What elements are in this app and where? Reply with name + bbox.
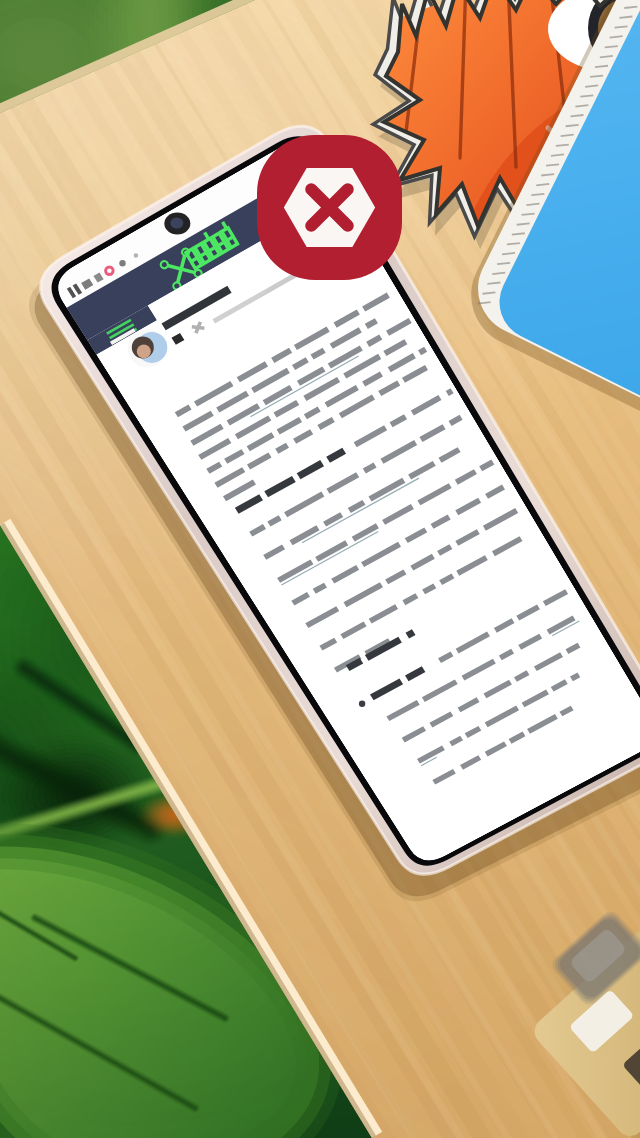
button[interactable]: Phone on desk photo — [0, 0, 640, 1138]
